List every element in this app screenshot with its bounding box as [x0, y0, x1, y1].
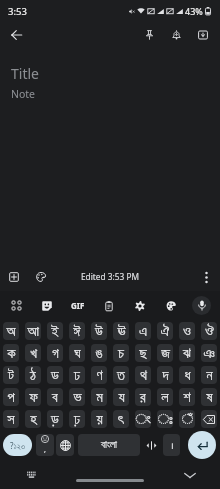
staticText: য — [118, 390, 125, 405]
staticText: আ — [27, 324, 39, 339]
button[interactable]: Symbols — [3, 434, 32, 456]
staticText: ক — [7, 346, 16, 361]
button[interactable]: Enter — [188, 431, 216, 459]
button[interactable]: ঢ — [69, 366, 85, 384]
button[interactable]: বাংলা — [78, 434, 140, 456]
button[interactable]: Pin — [137, 23, 161, 47]
button[interactable]: শ — [179, 388, 195, 406]
button[interactable]: Settings — [124, 291, 155, 320]
button[interactable]: Stickers — [31, 291, 62, 320]
button[interactable]: ছ — [135, 344, 151, 362]
button[interactable]: ড — [47, 366, 63, 384]
button[interactable]: খ — [25, 344, 41, 362]
button[interactable]: Background options — [30, 266, 52, 288]
button[interactable]: জ — [157, 344, 173, 362]
button[interactable]: ট — [3, 366, 19, 384]
button[interactable]: ঐ — [157, 322, 173, 340]
staticText: ঐ — [160, 324, 170, 339]
staticText: হ — [30, 412, 37, 427]
button[interactable]: চ — [113, 344, 129, 362]
button[interactable]: ই — [47, 322, 63, 340]
button[interactable]: প — [3, 388, 19, 406]
button[interactable]: Reminder — [164, 23, 188, 47]
staticText: য় — [96, 412, 103, 427]
button[interactable]: এ — [135, 322, 151, 340]
staticText: ম — [96, 390, 103, 405]
staticText: । — [170, 439, 174, 451]
button[interactable]: হ — [25, 410, 41, 428]
button[interactable]: Back — [6, 25, 26, 45]
button[interactable]: ঝ — [179, 344, 195, 362]
button[interactable]: ম — [91, 388, 107, 406]
staticText: ঘ — [74, 346, 81, 361]
button[interactable]: য — [113, 388, 129, 406]
button[interactable]: ঠ — [25, 366, 41, 384]
button[interactable]: ঘ — [69, 344, 85, 362]
button[interactable]: ও — [179, 322, 195, 340]
button[interactable]: ন — [201, 366, 217, 384]
button[interactable]: GIF — [62, 291, 93, 320]
staticText: ঝ — [183, 346, 191, 361]
button[interactable]: Clipboard — [93, 291, 124, 320]
button[interactable]: Backspace — [201, 410, 217, 428]
staticText: ব — [52, 390, 58, 405]
button[interactable]: ঔ — [201, 322, 217, 340]
button[interactable]: Change language — [56, 434, 74, 456]
button[interactable]: ফ — [25, 388, 41, 406]
button[interactable]: Emoji — [36, 434, 54, 456]
button[interactable]: ড় — [47, 410, 63, 428]
button[interactable]: ল — [157, 388, 173, 406]
button[interactable]: ঁ — [179, 410, 195, 428]
button[interactable]: ঢ় — [69, 410, 85, 428]
staticText: ঔ — [205, 324, 214, 339]
staticText: ষ — [206, 390, 213, 405]
button[interactable]: দ — [157, 366, 173, 384]
button[interactable]: ঙ — [91, 344, 107, 362]
staticText: Title — [11, 64, 39, 83]
button[interactable]: ধ — [179, 366, 195, 384]
staticText: Note — [11, 87, 36, 101]
button[interactable]: স — [3, 410, 19, 428]
button[interactable]: ং — [135, 410, 151, 428]
button[interactable]: । — [163, 434, 180, 456]
button[interactable]: ৎ — [113, 410, 129, 428]
button[interactable]: Themes — [155, 291, 186, 320]
button[interactable]: ভ — [69, 388, 85, 406]
button[interactable]: য় — [91, 410, 107, 428]
staticText: বাংলা — [101, 440, 117, 450]
staticText: ন — [206, 368, 213, 383]
staticText: অ — [6, 324, 16, 339]
button[interactable]: Add — [3, 266, 25, 288]
button[interactable]: থ — [135, 366, 151, 384]
button[interactable]: ষ — [201, 388, 217, 406]
button[interactable]: ণ — [91, 366, 107, 384]
button[interactable]: Hide keyboard — [182, 467, 198, 483]
button[interactable]: ব — [47, 388, 63, 406]
button[interactable]: উ — [91, 322, 107, 340]
button[interactable]: ত — [113, 366, 129, 384]
staticText: , — [44, 445, 46, 455]
button[interactable]: র — [135, 388, 151, 406]
staticText: ং — [135, 412, 151, 427]
button[interactable]: অ — [3, 322, 19, 340]
button[interactable]: আ — [25, 322, 41, 340]
staticText: চ — [118, 346, 124, 361]
staticText: ত — [117, 368, 125, 383]
staticText: ৎ — [118, 412, 124, 427]
staticText: ড — [51, 368, 59, 383]
button[interactable]: গ — [47, 344, 63, 362]
button[interactable]: Switch keyboard — [25, 468, 37, 480]
button[interactable]: ঞ — [201, 344, 217, 362]
staticText: গ — [52, 346, 59, 361]
button[interactable]: Voice input — [186, 291, 217, 320]
button[interactable]: Keyboard apps — [1, 291, 31, 320]
button[interactable]: Archive — [191, 23, 215, 47]
button[interactable]: ক — [3, 344, 19, 362]
button[interactable]: More options — [195, 266, 217, 288]
button[interactable]: ঊ — [113, 322, 129, 340]
button[interactable]: ঈ — [69, 322, 85, 340]
staticText: ও — [183, 324, 191, 339]
button[interactable]: ঃ — [157, 410, 173, 428]
staticText: এ — [139, 324, 147, 339]
button[interactable]: Cursor control — [143, 434, 160, 456]
